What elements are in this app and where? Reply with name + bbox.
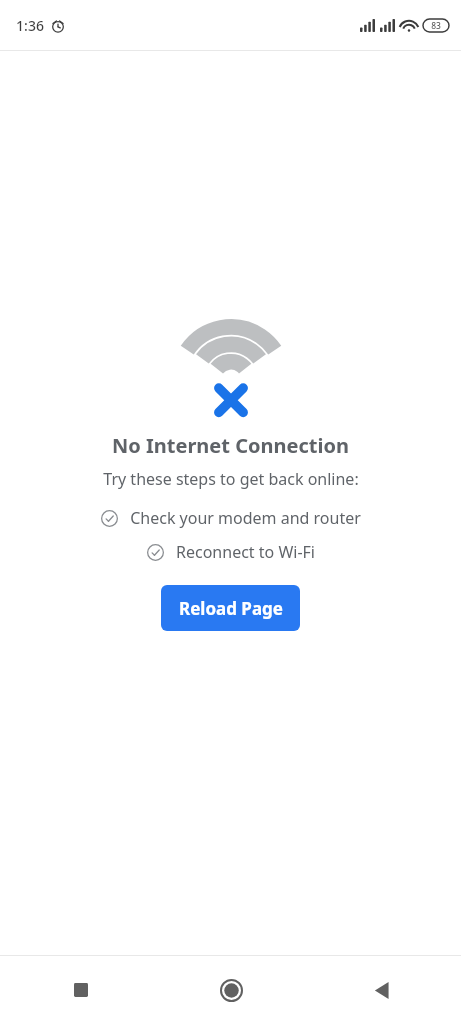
staticText: 83 xyxy=(431,20,441,32)
button[interactable]: Back xyxy=(357,966,405,1014)
staticText: Try these steps to get back online: xyxy=(103,468,359,490)
other: No Wi-Fi connection xyxy=(173,309,289,417)
staticText: 1:36 xyxy=(16,16,44,35)
button[interactable]: Reload Page xyxy=(161,585,300,631)
staticText: Check your modem and router xyxy=(130,507,361,529)
button[interactable]: Home xyxy=(207,966,255,1014)
staticText: Reconnect to Wi-Fi xyxy=(176,541,315,563)
button[interactable]: Recent apps xyxy=(57,966,105,1014)
staticText: Reload Page xyxy=(179,597,283,620)
staticText: No Internet Connection xyxy=(112,432,349,459)
